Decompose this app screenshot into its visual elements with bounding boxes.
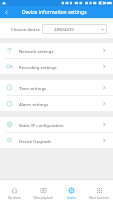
button[interactable]: Recording settings	[0, 59, 113, 74]
button[interactable]: Time settings	[0, 80, 113, 95]
button[interactable]: Video playback	[29, 180, 57, 200]
button[interactable]: More functions	[85, 180, 113, 200]
staticText: Video playback	[33, 196, 53, 200]
staticText: More functions	[89, 196, 109, 200]
staticText: Recording settings	[19, 64, 57, 70]
button[interactable]: Alarm settings	[0, 96, 113, 111]
button[interactable]: Back	[0, 6, 12, 18]
staticText: Device Upgrade	[19, 138, 51, 144]
button[interactable]: 28504439	[42, 24, 107, 34]
staticText: Device	[67, 196, 76, 200]
staticText: Alarm settings	[19, 101, 49, 107]
staticText: Time settings	[19, 85, 47, 91]
button[interactable]: My device	[0, 180, 29, 200]
button[interactable]: Static IP configuration	[0, 117, 113, 132]
staticText: Network settings	[19, 48, 54, 54]
staticText: Choose device	[11, 26, 40, 32]
staticText: 28504439	[54, 26, 74, 32]
button[interactable]: Network settings	[0, 43, 113, 58]
staticText: Device information settings	[22, 9, 87, 16]
button[interactable]: Device	[57, 180, 85, 200]
staticText: Static IP configuration	[19, 122, 64, 128]
staticText: My device	[8, 196, 21, 200]
button[interactable]: Device Upgrade	[0, 133, 113, 148]
